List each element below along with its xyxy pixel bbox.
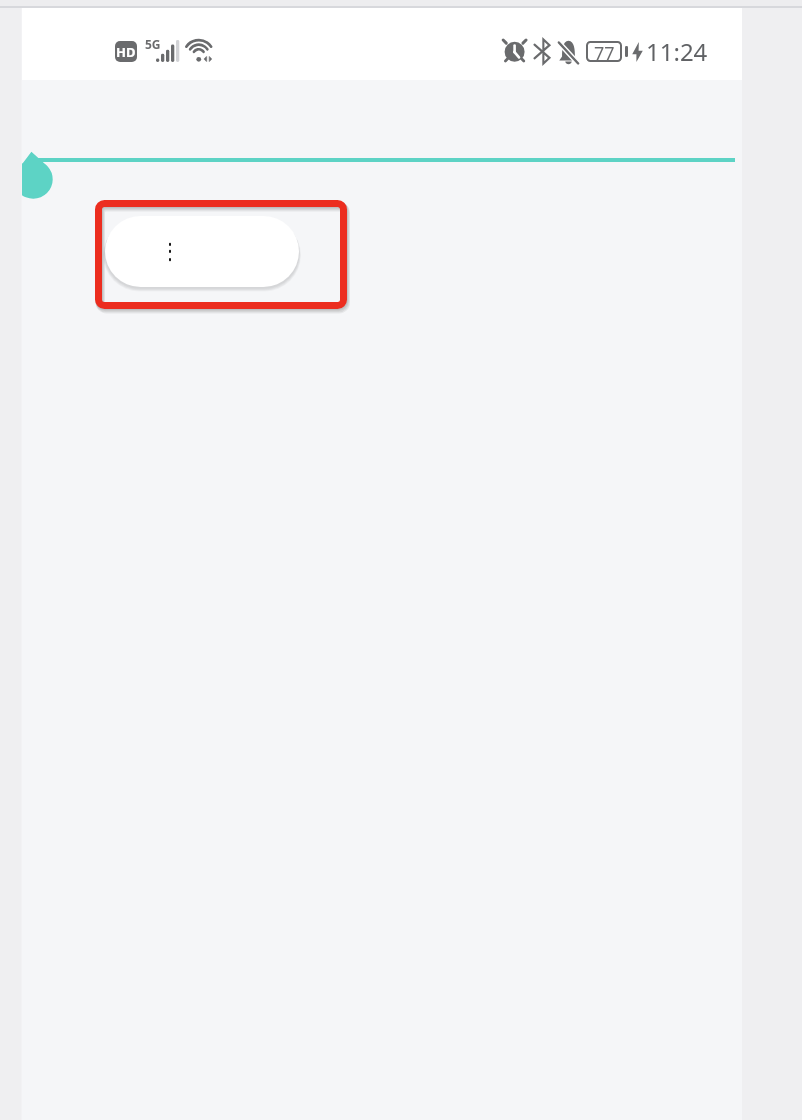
other: More options (162, 240, 178, 264)
staticText: 5G (145, 36, 161, 52)
staticText: 77 (594, 41, 615, 62)
button[interactable]: More options (105, 216, 299, 287)
staticText: HD (116, 43, 136, 61)
staticText: 11:24 (646, 35, 708, 68)
